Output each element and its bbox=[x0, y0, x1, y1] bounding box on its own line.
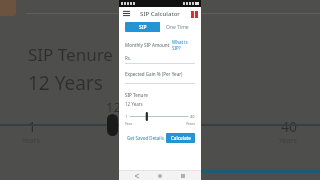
staticText: Year bbox=[125, 121, 133, 126]
staticText: SIP bbox=[139, 24, 147, 31]
button[interactable]: Recent apps bbox=[178, 171, 188, 180]
staticText: 12 Years bbox=[125, 101, 143, 107]
staticText: 1 bbox=[125, 114, 128, 119]
staticText: Calculate bbox=[171, 135, 191, 141]
staticText: 12 bbox=[106, 98, 121, 116]
button[interactable]: Open navigation menu bbox=[122, 9, 131, 18]
staticText: SIP Tenure bbox=[28, 43, 113, 66]
staticText: Years bbox=[22, 136, 40, 146]
button[interactable]: 1 bbox=[125, 112, 195, 121]
staticText: SIP Tenure bbox=[125, 92, 148, 98]
staticText: What is SIP? bbox=[172, 39, 193, 51]
staticText: Get Saved Details bbox=[127, 135, 164, 141]
staticText: Expected Gain % (Per Year) bbox=[125, 71, 183, 77]
staticText: Years bbox=[279, 136, 297, 146]
button[interactable]: Get Saved Details bbox=[125, 133, 166, 143]
button[interactable]: What is SIP? bbox=[170, 38, 195, 52]
staticText: One Time bbox=[166, 24, 189, 31]
staticText: Monthly SIP Amount bbox=[125, 42, 170, 48]
staticText: Rs. bbox=[125, 55, 132, 61]
staticText: 12 Years bbox=[28, 70, 103, 96]
staticText: Years bbox=[186, 121, 195, 126]
button[interactable]: Calculate bbox=[166, 133, 195, 143]
staticText: 40 bbox=[190, 114, 195, 119]
button[interactable]: One Time bbox=[160, 22, 195, 32]
button[interactable]: Home bbox=[155, 171, 165, 180]
button[interactable]: App logo bbox=[190, 10, 198, 18]
button[interactable]: SIP bbox=[125, 22, 160, 32]
staticText: 1 bbox=[28, 117, 37, 136]
staticText: 40 bbox=[281, 117, 298, 136]
staticText: SIP Calculator bbox=[140, 10, 180, 18]
button[interactable]: Back bbox=[132, 171, 142, 180]
